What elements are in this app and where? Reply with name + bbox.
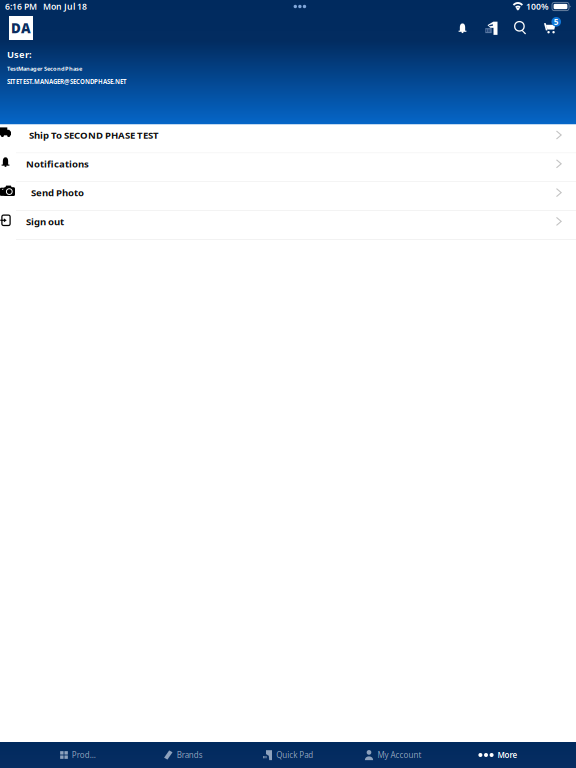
button[interactable]: Search [506,16,535,40]
button[interactable]: Ship To SECOND PHASE TEST [0,124,576,153]
staticText: TestManager SecondPhase [7,65,82,72]
staticText: Brands [177,750,203,760]
button[interactable]: Cart, 5 items [535,16,567,40]
button[interactable]: Send Photo [0,182,576,211]
staticText: 100% [526,1,549,12]
button[interactable]: My Account [340,742,445,768]
button[interactable]: Scan barcode [477,16,506,40]
staticText: User: [7,48,32,61]
button[interactable]: Sign out [0,211,576,240]
staticText: Notifications [26,157,89,170]
staticText: Send Photo [31,186,84,199]
button[interactable]: Notifications [448,16,477,40]
staticText: DA [11,19,31,37]
staticText: 6:16 PM [5,1,37,12]
button[interactable]: Home [9,16,33,40]
staticText: Prod... [72,750,96,760]
staticText: 5 [554,16,559,27]
staticText: My Account [377,750,421,760]
staticText: Mon Jul 18 [43,1,87,12]
button[interactable]: More [445,742,550,768]
button[interactable]: Quick Pad [235,742,340,768]
staticText: Ship To SECOND PHASE TEST [29,128,159,142]
staticText: Sign out [26,215,64,228]
staticText: More [498,750,518,760]
button[interactable]: Prod... [25,742,130,768]
button[interactable]: Brands [130,742,235,768]
button[interactable]: Notifications [0,153,576,182]
staticText: Quick Pad [276,750,313,760]
staticText: SITETEST.MANAGER@SECONDPHASE.NET [7,77,127,86]
